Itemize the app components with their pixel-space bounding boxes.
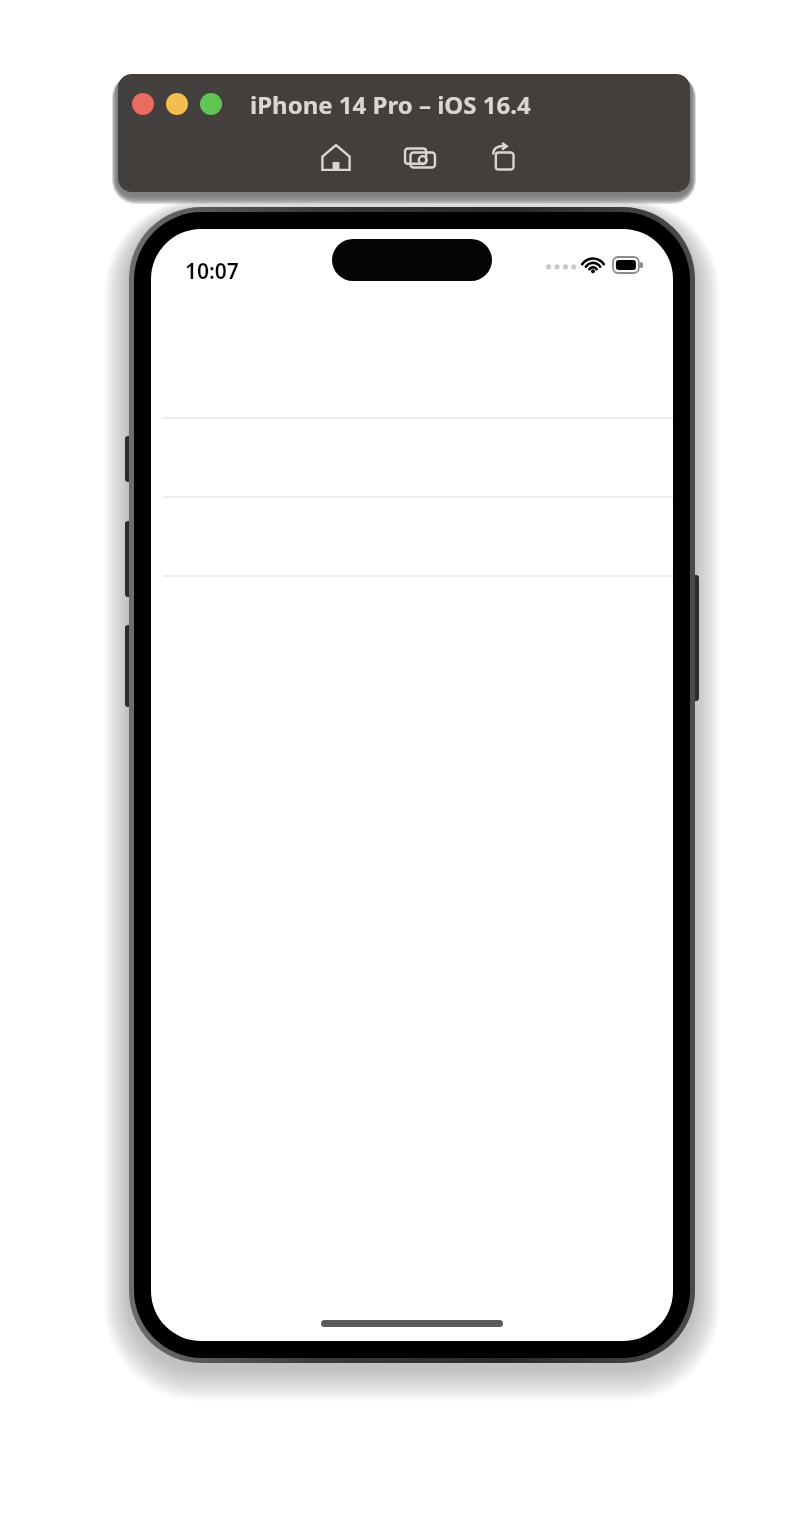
button[interactable]: Zoom: [200, 93, 222, 115]
staticText: iPhone 14 Pro – iOS 16.4: [250, 88, 531, 121]
button[interactable]: Screenshot: [398, 136, 442, 180]
button[interactable]: Rotate: [482, 136, 526, 180]
staticText: 10:07: [185, 257, 239, 286]
button[interactable]: Close: [132, 93, 154, 115]
button[interactable]: Home: [314, 136, 358, 180]
button[interactable]: Minimize: [166, 93, 188, 115]
